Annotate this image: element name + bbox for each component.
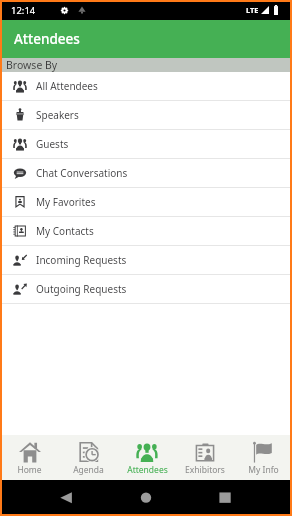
staticText: Incoming Requests <box>36 253 127 267</box>
button[interactable]: Agenda <box>59 441 118 480</box>
staticText: Speakers <box>36 108 79 122</box>
button[interactable]: Guests <box>0 130 292 159</box>
staticText: My Contacts <box>36 224 94 238</box>
staticText: My Favorites <box>36 195 96 209</box>
button[interactable]: My Favorites <box>0 188 292 217</box>
staticText: My Info <box>248 464 279 476</box>
staticText: Browse By <box>6 58 58 72</box>
staticText: Exhibitors <box>185 464 225 476</box>
button[interactable]: My Info <box>234 441 292 480</box>
button[interactable]: Home <box>131 483 161 513</box>
staticText: Attendees <box>14 30 80 48</box>
staticText: Attendees <box>127 464 168 476</box>
staticText: 12:14 <box>11 4 36 17</box>
button[interactable]: Back <box>51 483 81 513</box>
staticText: Outgoing Requests <box>36 282 127 296</box>
button[interactable]: My Contacts <box>0 217 292 246</box>
button[interactable]: All Attendees <box>0 72 292 101</box>
staticText: Chat Conversations <box>36 166 128 180</box>
button[interactable]: Recent apps <box>210 483 240 513</box>
button[interactable]: Speakers <box>0 101 292 130</box>
button[interactable]: Home <box>0 441 59 480</box>
button[interactable]: Incoming Requests <box>0 246 292 275</box>
staticText: Home <box>17 464 42 476</box>
button[interactable]: Exhibitors <box>176 441 234 480</box>
button[interactable]: Attendees <box>118 441 176 480</box>
button[interactable]: Outgoing Requests <box>0 275 292 304</box>
staticText: Agenda <box>73 464 104 476</box>
staticText: All Attendees <box>36 79 98 93</box>
staticText: Guests <box>36 137 69 151</box>
staticText: LTE <box>246 5 259 15</box>
button[interactable]: Chat Conversations <box>0 159 292 188</box>
